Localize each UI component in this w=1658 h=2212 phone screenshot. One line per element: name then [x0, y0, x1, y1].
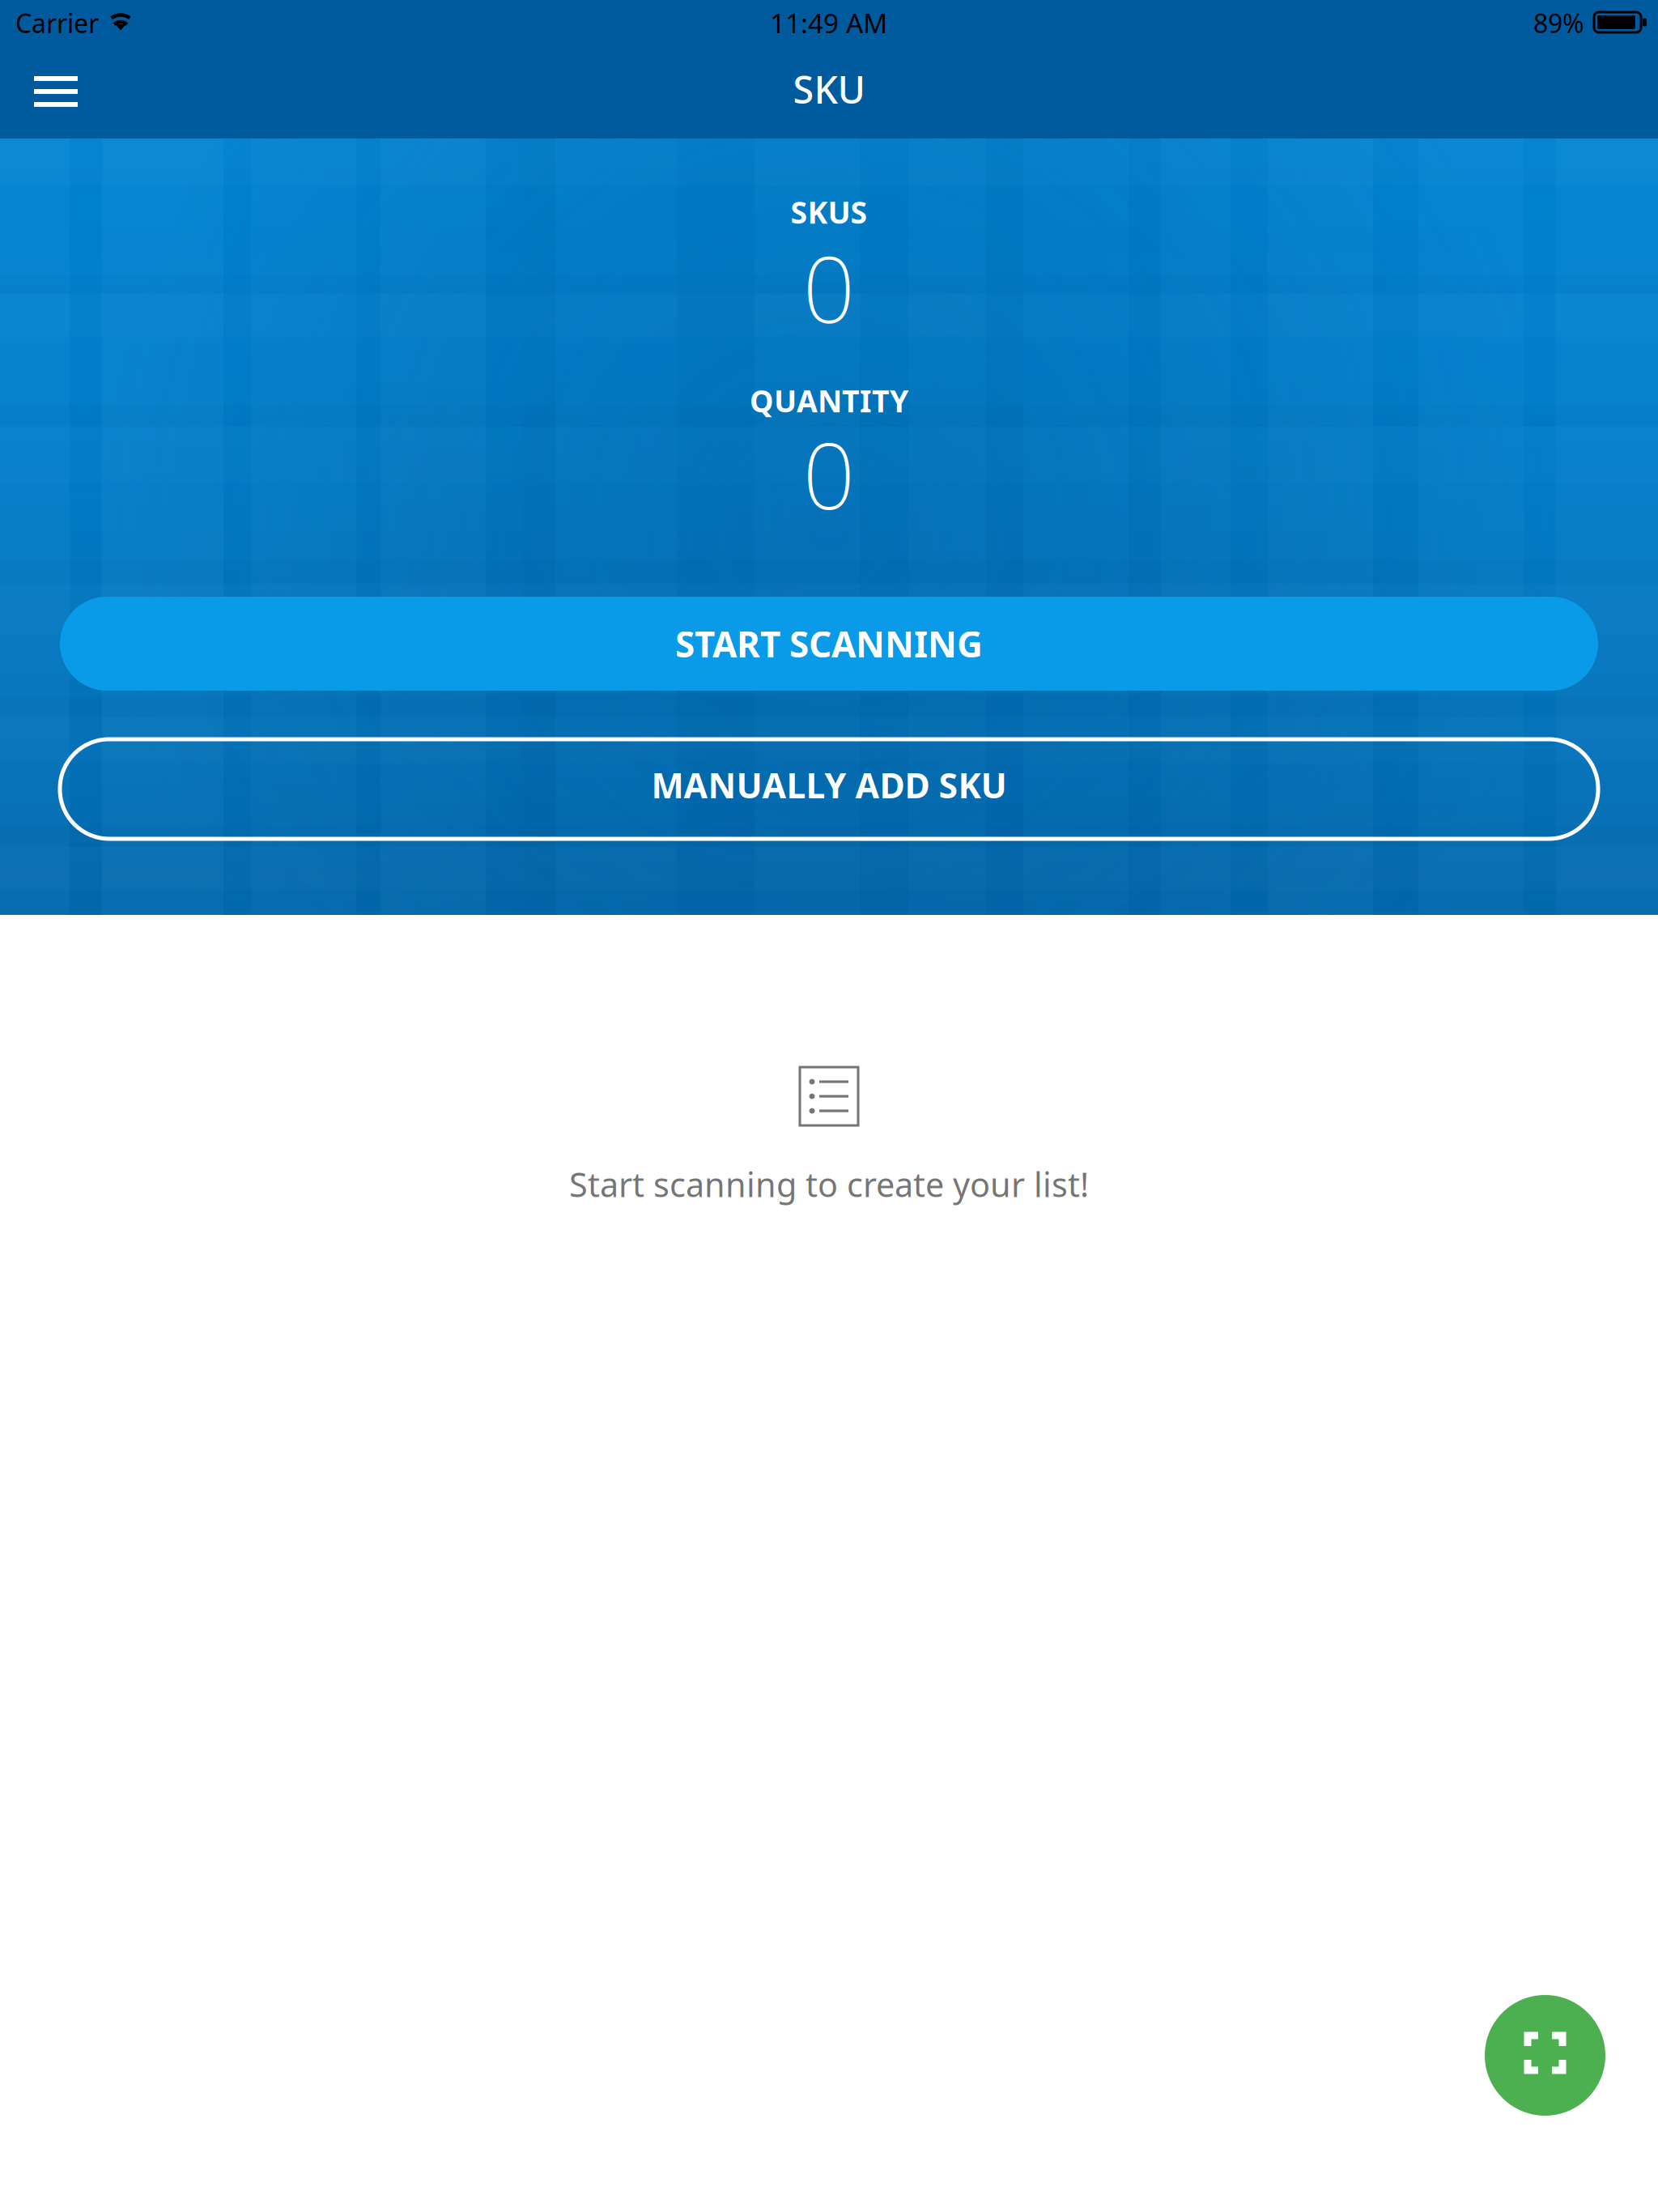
- button[interactable]: Menu: [0, 45, 105, 138]
- staticText: Carrier: [15, 6, 99, 40]
- staticText: SKU: [793, 64, 865, 114]
- staticText: 0: [803, 226, 855, 348]
- staticText: START SCANNING: [675, 620, 983, 667]
- staticText: 89%: [1533, 6, 1584, 40]
- button[interactable]: START SCANNING: [60, 597, 1598, 691]
- button[interactable]: Scan barcode: [1485, 1995, 1605, 2116]
- staticText: Start scanning to create your list!: [569, 1162, 1089, 1206]
- staticText: 11:49 AM: [770, 5, 887, 41]
- button[interactable]: MANUALLY ADD SKU: [60, 739, 1598, 839]
- staticText: 0: [803, 413, 855, 535]
- staticText: MANUALLY ADD SKU: [651, 762, 1007, 808]
- staticText: SKUS: [791, 192, 867, 232]
- staticText: QUANTITY: [750, 381, 908, 421]
